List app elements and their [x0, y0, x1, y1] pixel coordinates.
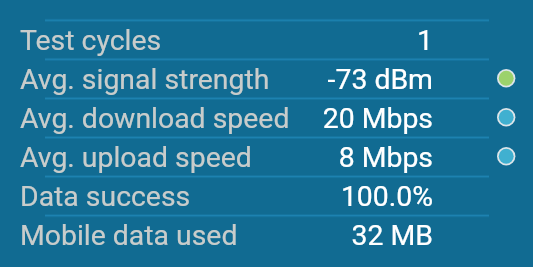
- button[interactable]: Avg. signal strength: [0, 59, 533, 98]
- other: Upload quality: fair: [494, 144, 518, 168]
- staticText: Mobile data used: [20, 219, 238, 252]
- staticText: Data success: [20, 180, 191, 213]
- staticText: Avg. signal strength: [20, 63, 270, 96]
- staticText: 20 Mbps: [322, 102, 433, 135]
- staticText: 1: [417, 24, 433, 57]
- button[interactable]: Test cycles: [0, 20, 533, 59]
- button[interactable]: Avg. upload speed: [0, 137, 533, 176]
- other: Signal quality: good: [494, 66, 518, 90]
- button[interactable]: Avg. download speed: [0, 98, 533, 137]
- button[interactable]: Data success: [0, 176, 533, 215]
- staticText: 8 Mbps: [338, 141, 433, 174]
- staticText: Avg. upload speed: [20, 141, 252, 174]
- staticText: -73 dBm: [327, 63, 433, 96]
- staticText: Test cycles: [20, 24, 162, 57]
- staticText: 100.0%: [340, 180, 433, 213]
- button[interactable]: Mobile data used: [0, 215, 533, 254]
- staticText: Avg. download speed: [20, 102, 290, 135]
- other: Download quality: fair: [494, 105, 518, 129]
- staticText: 32 MB: [351, 219, 433, 252]
